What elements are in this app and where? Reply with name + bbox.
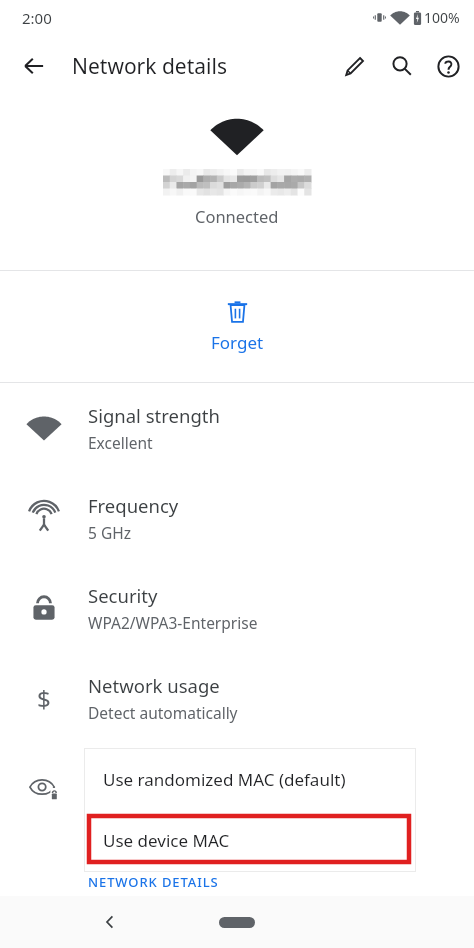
staticText: Connected (195, 205, 279, 227)
staticText: 5 GHz (88, 522, 131, 543)
staticText: WPA2/WPA3-Enterprise (88, 612, 258, 633)
button[interactable]: Forget (0, 271, 474, 382)
staticText: Security (88, 583, 158, 608)
staticText: Forget (211, 331, 264, 354)
staticText: Frequency (88, 493, 179, 518)
button[interactable] (0, 743, 474, 833)
staticText: Network usage (88, 673, 220, 698)
staticText: Use device MAC (103, 829, 230, 852)
button[interactable]: Search (378, 42, 426, 90)
staticText: Use randomized MAC (default) (103, 768, 346, 791)
button[interactable]: Home (201, 909, 273, 935)
staticText: $ (37, 682, 51, 715)
staticText: 100% (424, 8, 460, 27)
staticText: Signal strength (88, 403, 220, 428)
staticText: Excellent (88, 432, 153, 453)
button[interactable]: Security (0, 563, 474, 653)
button[interactable]: Use randomized MAC (default) (85, 749, 415, 810)
staticText: Network details (72, 52, 227, 81)
staticText: 2:00 (22, 8, 52, 28)
button[interactable]: Back (88, 900, 132, 944)
button[interactable]: Use device MAC (85, 810, 415, 871)
button[interactable]: Signal strength (0, 383, 474, 473)
button[interactable]: Edit (330, 42, 378, 90)
button[interactable]: Frequency (0, 473, 474, 563)
button[interactable]: Navigate up (10, 42, 58, 90)
button[interactable]: $ (0, 653, 474, 743)
staticText: NETWORK DETAILS (88, 873, 219, 891)
button[interactable]: Help (424, 42, 472, 90)
staticText: Detect automatically (88, 702, 238, 723)
